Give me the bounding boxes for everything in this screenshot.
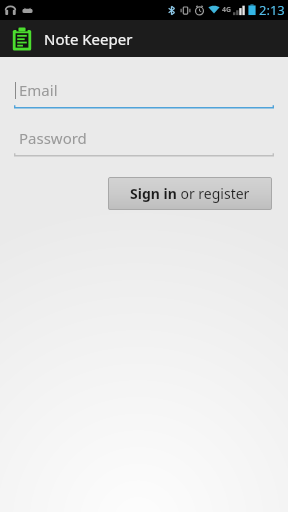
staticText: Note Keeper: [44, 29, 133, 49]
staticText: 4G: [222, 5, 232, 15]
staticText: Password: [19, 128, 87, 148]
staticText: Sign in or register: [130, 184, 250, 203]
button[interactable]: Password: [14, 128, 274, 157]
button[interactable]: Sign in or register: [108, 177, 272, 210]
button[interactable]: Email: [14, 80, 274, 109]
staticText: Email: [19, 80, 58, 100]
staticText: 2:13: [259, 1, 285, 19]
